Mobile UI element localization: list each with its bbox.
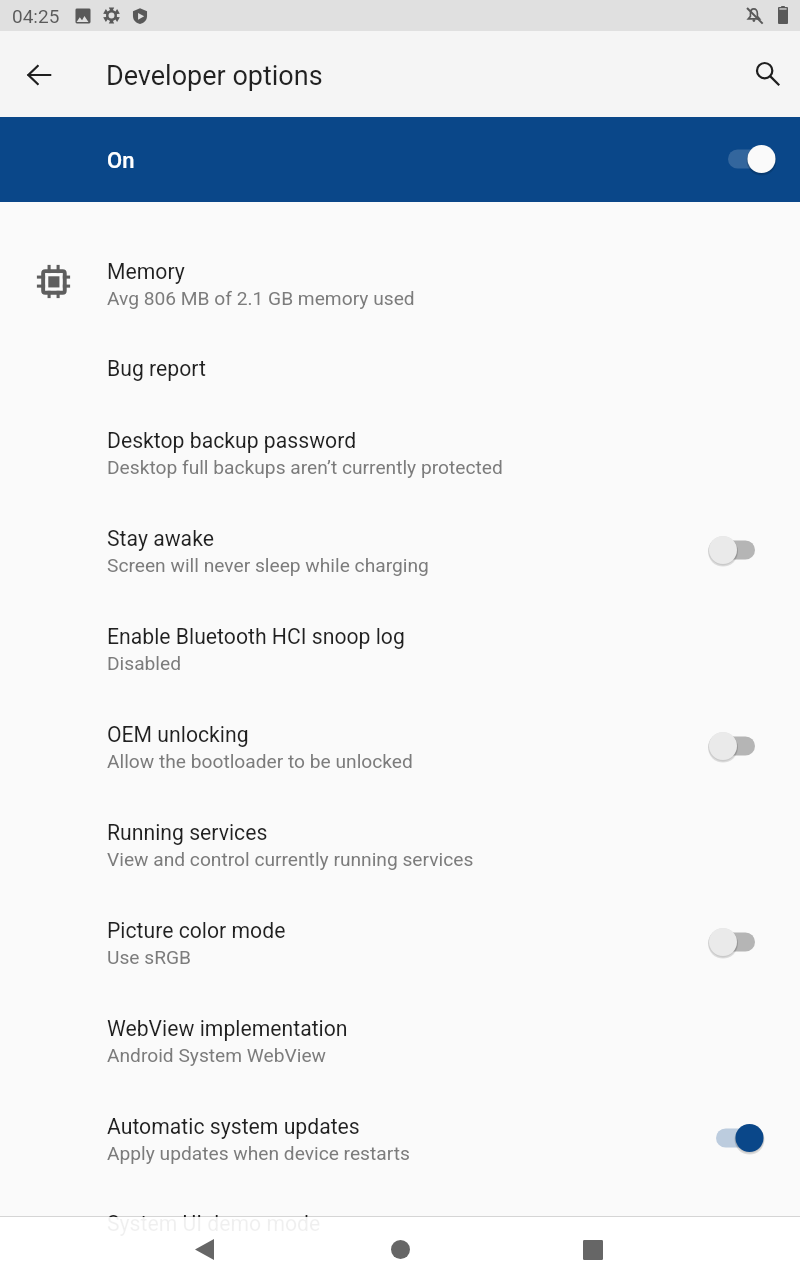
button[interactable]: On bbox=[0, 117, 800, 202]
staticText: Disabled bbox=[107, 652, 182, 675]
staticText: Allow the bootloader to be unlocked bbox=[107, 750, 413, 773]
button[interactable]: Picture color mode bbox=[0, 894, 800, 992]
button[interactable]: OEM unlocking bbox=[0, 698, 800, 796]
staticText: Picture color mode bbox=[107, 918, 286, 943]
staticText: OEM unlocking bbox=[107, 722, 249, 747]
button[interactable]: Home bbox=[368, 1218, 432, 1280]
staticText: Automatic system updates bbox=[107, 1114, 360, 1139]
button[interactable]: Back bbox=[172, 1218, 236, 1280]
staticText: On bbox=[107, 148, 135, 174]
staticText: Screen will never sleep while charging bbox=[107, 554, 429, 577]
button[interactable]: WebView implementation bbox=[0, 992, 800, 1090]
staticText: Use sRGB bbox=[107, 946, 192, 969]
staticText: System UI demo mode bbox=[107, 1211, 321, 1236]
staticText: Bug report bbox=[107, 356, 206, 381]
staticText: Enable Bluetooth HCI snoop log bbox=[107, 624, 405, 649]
staticText: Desktop backup password bbox=[107, 428, 357, 453]
button[interactable]: Automatic system updates bbox=[0, 1090, 800, 1188]
staticText: WebView implementation bbox=[107, 1016, 348, 1041]
button[interactable]: Recent apps bbox=[561, 1218, 625, 1280]
button[interactable]: Enable Bluetooth HCI snoop log bbox=[0, 600, 800, 698]
button[interactable]: Stay awake bbox=[0, 502, 800, 600]
button[interactable]: Running services bbox=[0, 796, 800, 894]
staticText: 04:25 bbox=[12, 5, 60, 27]
staticText: View and control currently running servi… bbox=[107, 848, 474, 871]
button[interactable]: Memory bbox=[0, 235, 800, 333]
button[interactable]: Desktop backup password bbox=[0, 404, 800, 502]
staticText: Stay awake bbox=[107, 526, 214, 551]
staticText: Apply updates when device restarts bbox=[107, 1142, 410, 1165]
staticText: Android System WebView bbox=[107, 1044, 327, 1067]
staticText: Avg 806 MB of 2.1 GB memory used bbox=[107, 287, 415, 310]
button[interactable]: Bug report bbox=[0, 333, 800, 404]
staticText: Developer options bbox=[106, 60, 323, 92]
staticText: Memory bbox=[107, 259, 185, 284]
button[interactable]: System UI demo mode bbox=[0, 1188, 800, 1259]
button[interactable]: Back bbox=[14, 50, 62, 98]
button[interactable]: Search bbox=[743, 50, 791, 98]
staticText: Desktop full backups aren’t currently pr… bbox=[107, 456, 503, 479]
staticText: Running services bbox=[107, 820, 268, 845]
